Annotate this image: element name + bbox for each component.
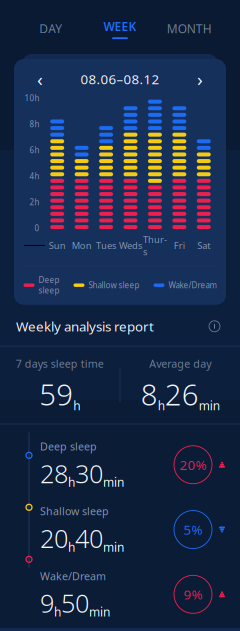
staticText: 28	[40, 456, 68, 490]
staticText: Sun	[49, 239, 66, 252]
staticText: Weds	[119, 239, 142, 252]
staticText: h	[73, 398, 80, 414]
staticText: ›	[197, 67, 203, 91]
button[interactable]: Shallow sleep	[40, 497, 226, 562]
staticText: 8	[141, 375, 158, 414]
staticText: 26	[165, 375, 199, 414]
staticText: Wake/Dream	[168, 280, 216, 290]
staticText: Wake/Dream	[40, 569, 106, 583]
staticText: MONTH	[167, 21, 212, 37]
staticText: h	[54, 604, 61, 620]
staticText: Deep sleep	[38, 275, 59, 296]
staticText: 59	[39, 375, 73, 414]
staticText: Shallow sleep	[40, 504, 109, 518]
staticText: min	[89, 604, 110, 620]
staticText: 6h	[29, 145, 39, 155]
staticText: WEEK	[103, 18, 136, 34]
staticText: h	[68, 474, 75, 490]
button[interactable]: Wake/Dream	[40, 562, 226, 627]
staticText: 30	[75, 456, 103, 490]
staticText: h	[158, 398, 165, 414]
staticText: 8h	[29, 119, 39, 129]
staticText: min	[103, 539, 124, 555]
staticText: 0	[34, 223, 39, 233]
staticText: Thurs	[143, 233, 167, 258]
staticText: 5%	[183, 521, 202, 538]
staticText: 40	[75, 521, 103, 555]
staticText: 20	[40, 521, 68, 555]
staticText: Tues	[96, 239, 116, 252]
staticText: Average day	[149, 356, 211, 371]
staticText: min	[199, 398, 220, 414]
staticText: 10h	[24, 93, 39, 103]
button[interactable]: Next week	[190, 69, 210, 89]
staticText: Deep sleep	[40, 439, 97, 453]
staticText: 7 days sleep time	[16, 356, 104, 371]
button[interactable]: Deep sleep	[40, 432, 226, 497]
staticText: Sat	[197, 239, 210, 252]
staticText: min	[103, 474, 124, 490]
button[interactable]: MONTH	[155, 15, 224, 43]
button[interactable]: Previous week	[30, 69, 50, 89]
button[interactable]: DAY	[16, 15, 85, 43]
staticText: Weekly analysis report	[16, 317, 154, 335]
staticText: DAY	[39, 21, 62, 37]
staticText: 9	[40, 586, 54, 620]
staticText: ‹	[37, 67, 43, 91]
staticText: 9%	[183, 585, 202, 603]
button[interactable]: About this report	[205, 317, 224, 336]
button[interactable]: WEEK	[85, 12, 155, 45]
staticText: Fri	[174, 239, 185, 252]
staticText: 08.06–08.12	[80, 70, 159, 88]
staticText: h	[68, 539, 75, 555]
staticText: Shallow sleep	[88, 280, 139, 290]
staticText: 2h	[29, 197, 39, 207]
staticText: 20%	[179, 456, 206, 474]
staticText: 50	[61, 586, 89, 620]
staticText: Mon	[72, 239, 92, 252]
staticText: 4h	[29, 171, 39, 181]
